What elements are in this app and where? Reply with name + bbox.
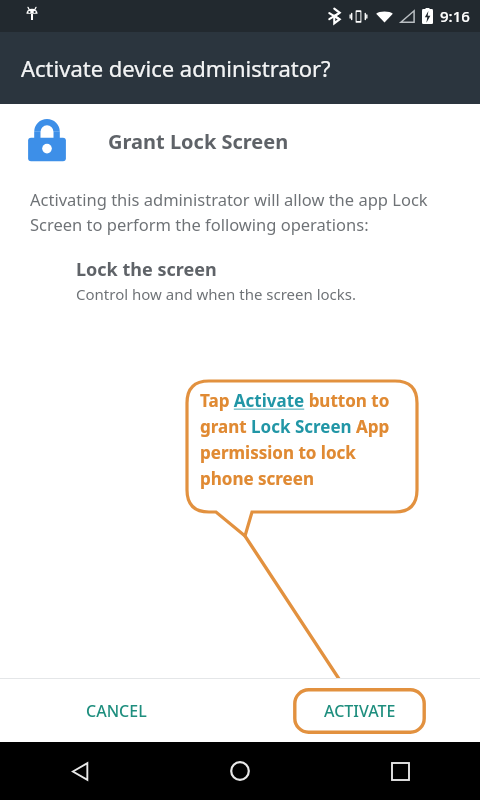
staticText: Tap Activate button to grant Lock Screen… xyxy=(200,389,412,490)
staticText: Lock the screen xyxy=(76,257,217,282)
staticText: CANCEL xyxy=(86,700,147,722)
staticText: ACTIVATE xyxy=(324,700,396,722)
button[interactable]: CANCEL xyxy=(66,690,167,732)
staticText: 9:16 xyxy=(440,6,470,26)
button[interactable]: Tap Activate button to grant Lock Screen… xyxy=(200,389,412,490)
button[interactable]: ACTIVATE xyxy=(293,688,426,734)
button[interactable]: Back xyxy=(56,747,104,795)
staticText: Activate device administrator? xyxy=(21,53,331,83)
staticText: Control how and when the screen locks. xyxy=(76,284,356,304)
staticText: Grant Lock Screen xyxy=(108,128,289,155)
button[interactable]: Recent apps xyxy=(376,747,424,795)
staticText: Activating this administrator will allow… xyxy=(30,188,428,235)
button[interactable]: Home xyxy=(216,747,264,795)
